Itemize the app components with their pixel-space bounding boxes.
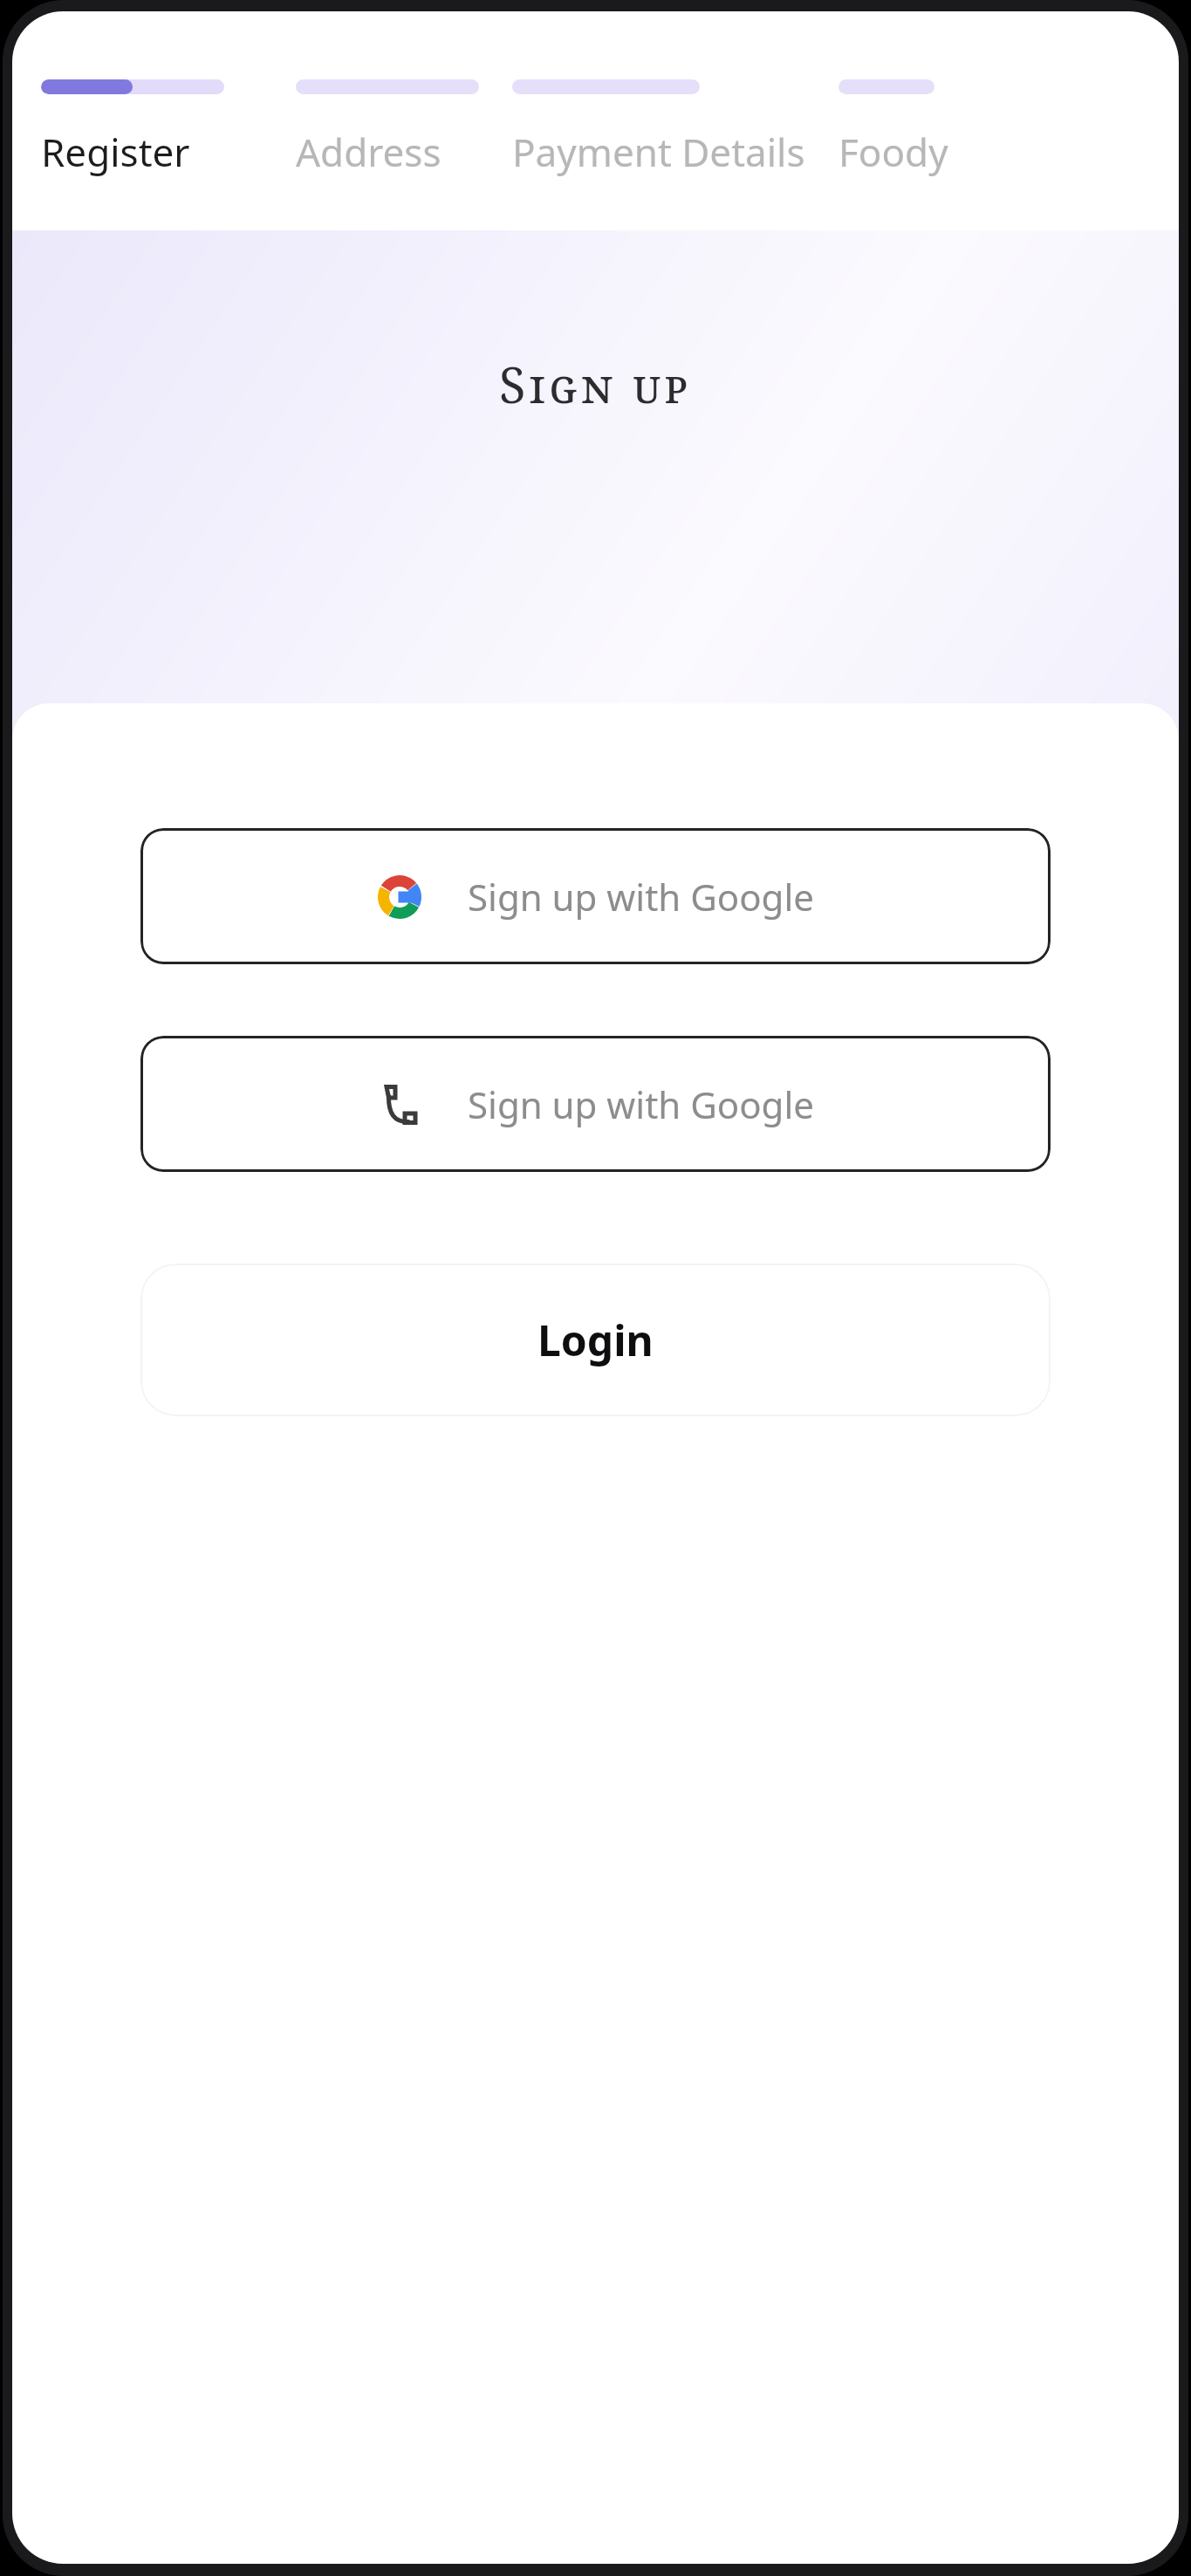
staticText: Login [537, 1312, 654, 1368]
staticText: Sign up with Google [468, 1079, 814, 1129]
button[interactable]: Register [41, 79, 296, 178]
button[interactable]: Payment Details [512, 79, 838, 178]
staticText: Address [296, 126, 441, 178]
button[interactable]: Address [296, 79, 512, 178]
staticText: Foody [838, 126, 948, 178]
staticText: Sign up with Google [468, 872, 814, 921]
staticText: Payment Details [512, 126, 805, 178]
button[interactable]: Sign up with phone [140, 1036, 1051, 1172]
staticText: Register [41, 126, 190, 178]
button[interactable]: Foody [838, 79, 948, 178]
other: Google [378, 875, 421, 919]
button[interactable]: Login [140, 1264, 1051, 1416]
other: Sign up with phone [378, 1083, 421, 1127]
button[interactable]: Google [140, 828, 1051, 964]
staticText: Sɪɢɴ ᴜᴘ [499, 351, 692, 417]
